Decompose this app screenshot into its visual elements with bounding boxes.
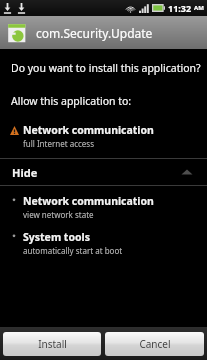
staticText: view network state: [23, 209, 94, 220]
staticText: com.Security.Update: [36, 25, 153, 41]
button[interactable]: System tools: [0, 228, 207, 258]
other: Collapse: [179, 164, 195, 180]
staticText: AM: [194, 4, 204, 12]
staticText: 11:32: [168, 2, 192, 14]
staticText: Cancel: [139, 337, 171, 351]
button[interactable]: Network communication: [0, 192, 207, 222]
staticText: Network communication: [23, 123, 154, 137]
button[interactable]: Install: [3, 332, 101, 356]
staticText: Hide: [12, 165, 38, 180]
button[interactable]: Cancel: [105, 332, 204, 356]
staticText: System tools: [23, 230, 90, 244]
staticText: Allow this application to:: [11, 94, 132, 108]
button[interactable]: Network communication: [0, 121, 207, 151]
staticText: Do you want to install this application?: [11, 61, 201, 75]
staticText: automatically start at boot: [23, 245, 123, 256]
button[interactable]: Hide: [0, 159, 207, 185]
staticText: Install: [38, 337, 67, 351]
staticText: full Internet access: [23, 138, 95, 149]
staticText: Network communication: [23, 194, 154, 208]
